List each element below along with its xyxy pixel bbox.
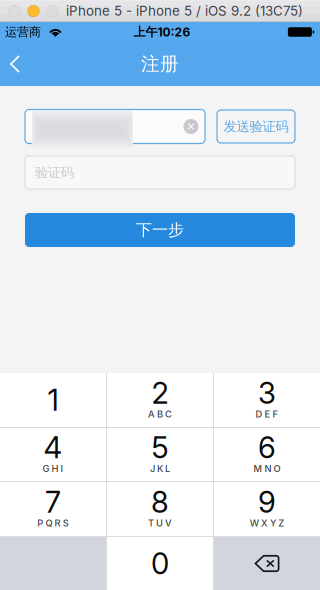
staticText: 上午10:26 [133,24,190,39]
staticText: 2 [151,375,168,411]
staticText: PQRS [37,517,69,529]
staticText: 下一步 [136,220,184,240]
staticText: 6 [258,430,276,465]
staticText: TUV [148,517,172,529]
staticText: JKL [150,463,170,474]
button[interactable]: Clear text [179,112,203,140]
button[interactable]: 发送验证码 [217,110,295,143]
button[interactable]: 9 [214,482,320,536]
staticText: 注册 [141,52,179,76]
button[interactable]: 5 [107,428,213,481]
button[interactable]: 1 [0,373,106,427]
staticText: MNO [253,463,281,474]
staticText: DEF [255,408,279,420]
staticText: 8 [151,484,169,520]
button[interactable]: 7 [0,482,106,536]
button[interactable]: Zoom window [43,1,62,21]
staticText: 运营商 [5,24,41,39]
button[interactable]: 2 [107,373,213,427]
button[interactable]: 4 [0,428,106,481]
staticText: 验证码 [35,164,74,181]
staticText: WXYZ [250,517,284,529]
staticText: 9 [258,484,276,520]
staticText: 3 [258,375,276,411]
button[interactable]: 3 [214,373,320,427]
staticText: 4 [43,430,62,465]
staticText: 7 [45,484,61,520]
staticText: 发送验证码 [223,118,288,135]
button[interactable]: Close window [5,1,24,21]
staticText: iPhone 5 - iPhone 5 / iOS 9.2 (13C75) [66,3,303,19]
button[interactable]: Delete [214,537,320,590]
staticText: 1 [47,382,58,418]
button[interactable]: 0 [107,537,213,590]
button[interactable]: 6 [214,428,320,481]
button[interactable]: 下一步 [25,213,295,247]
staticText: 5 [151,430,168,465]
staticText: ABC [148,408,172,420]
button[interactable]: Back [0,42,30,86]
staticText: 0 [151,546,169,581]
button[interactable]: 8 [107,482,213,536]
button[interactable]: Minimize window [24,1,43,21]
staticText: GHI [42,463,64,474]
